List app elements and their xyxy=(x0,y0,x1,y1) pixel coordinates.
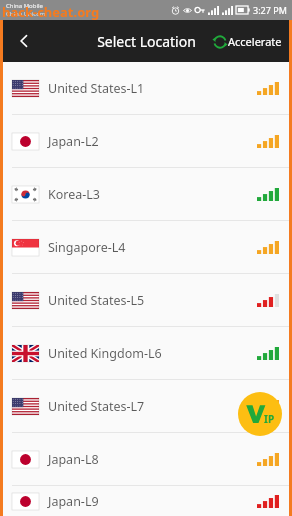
staticText: Select Location xyxy=(97,32,196,51)
button[interactable]: Japan-L8 xyxy=(3,433,289,485)
button[interactable]: Accelerate xyxy=(211,28,284,55)
staticText: IP xyxy=(264,412,275,426)
staticText: Japan-L9 xyxy=(48,493,99,510)
button[interactable]: United States-L7 xyxy=(3,380,289,432)
staticText: China Unicom xyxy=(6,10,46,18)
staticText: hack-cheat.org xyxy=(2,3,100,21)
staticText: United States-L7 xyxy=(48,398,145,415)
staticText: Korea-L3 xyxy=(48,186,101,203)
staticText: Singapore-L4 xyxy=(48,239,126,256)
staticText: Accelerate xyxy=(228,34,282,49)
button[interactable]: Back xyxy=(3,20,45,62)
button[interactable]: Korea-L3 xyxy=(3,168,289,220)
button[interactable]: VIP xyxy=(238,392,282,436)
button[interactable]: United States-L1 xyxy=(3,62,289,114)
staticText: Japan-L2 xyxy=(48,133,99,150)
staticText: United States-L5 xyxy=(48,292,145,309)
button[interactable]: Singapore-L4 xyxy=(3,221,289,273)
button[interactable]: United States-L5 xyxy=(3,274,289,326)
staticText: 3:27 PM xyxy=(253,4,287,16)
button[interactable]: Japan-L9 xyxy=(3,486,289,516)
staticText: Japan-L8 xyxy=(48,451,99,468)
staticText: United Kingdom-L6 xyxy=(48,345,162,362)
button[interactable]: United Kingdom-L6 xyxy=(3,327,289,379)
button[interactable]: Japan-L2 xyxy=(3,115,289,167)
staticText: United States-L1 xyxy=(48,80,145,97)
staticText: China Mobile xyxy=(6,2,43,10)
